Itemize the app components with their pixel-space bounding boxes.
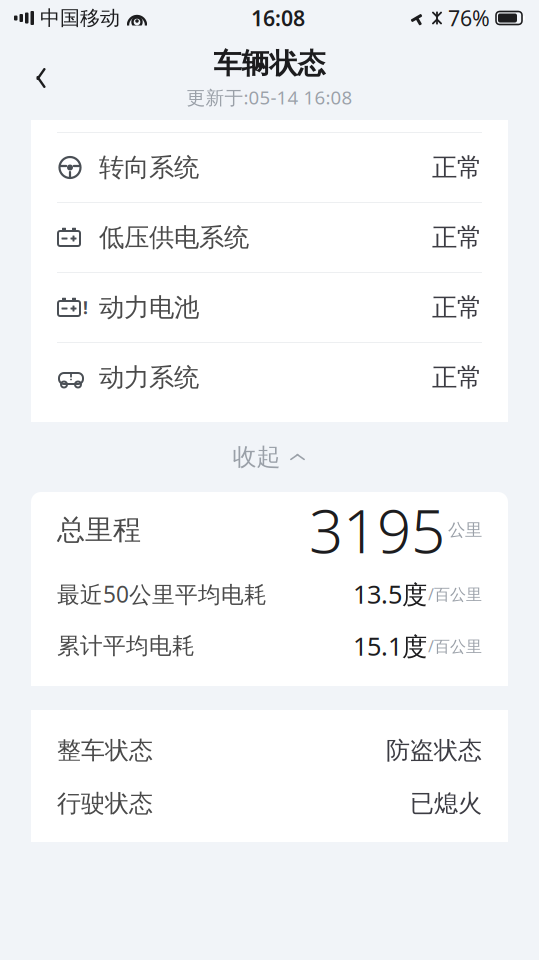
button[interactable]: 收起: [208, 422, 330, 492]
button[interactable]: 动力系统: [31, 343, 508, 412]
staticText: 3195: [309, 490, 445, 570]
staticText: !: [83, 296, 88, 319]
staticText: 收起: [232, 442, 280, 472]
staticText: 转向系统: [99, 152, 199, 183]
staticText: 正常: [432, 222, 482, 253]
staticText: 车辆状态: [213, 46, 325, 81]
staticText: 正常: [432, 152, 482, 183]
staticText: /百公里: [428, 635, 482, 657]
staticText: 累计平均电耗: [57, 632, 195, 660]
staticText: 动力系统: [99, 362, 199, 393]
staticText: 正常: [432, 362, 482, 393]
button[interactable]: 低压供电系统: [31, 203, 508, 272]
staticText: 15.1度: [353, 629, 427, 663]
staticText: 动力电池: [99, 292, 199, 323]
staticText: 行驶状态: [57, 789, 153, 818]
button[interactable]: 返回: [14, 55, 68, 101]
staticText: 低压供电系统: [99, 222, 249, 253]
staticText: 防盗状态: [386, 736, 482, 765]
staticText: /百公里: [428, 583, 482, 605]
staticText: 更新于:05-14 16:08: [186, 85, 352, 110]
staticText: 13.5度: [353, 577, 427, 611]
staticText: 公里: [448, 519, 482, 541]
staticText: 总里程: [57, 513, 141, 547]
staticText: 76%: [448, 4, 490, 32]
button[interactable]: !: [31, 273, 508, 342]
staticText: 整车状态: [57, 736, 153, 765]
staticText: 最近50公里平均电耗: [57, 579, 267, 609]
button[interactable]: 转向系统: [31, 133, 508, 202]
staticText: 已熄火: [410, 789, 482, 818]
staticText: 16:08: [251, 4, 305, 32]
staticText: 中国移动: [40, 6, 120, 30]
staticText: 正常: [432, 292, 482, 323]
